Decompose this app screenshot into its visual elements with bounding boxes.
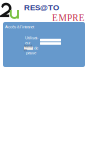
button[interactable]: Valider [24, 46, 33, 50]
staticText: EMPREINT [52, 13, 85, 23]
staticText: Accès à l'intranet [5, 24, 34, 29]
staticText: RES@TO [24, 3, 59, 12]
staticText: Valider [24, 44, 33, 52]
staticText: Mot de passe [26, 45, 38, 55]
staticText: Utilisateur [25, 35, 38, 45]
